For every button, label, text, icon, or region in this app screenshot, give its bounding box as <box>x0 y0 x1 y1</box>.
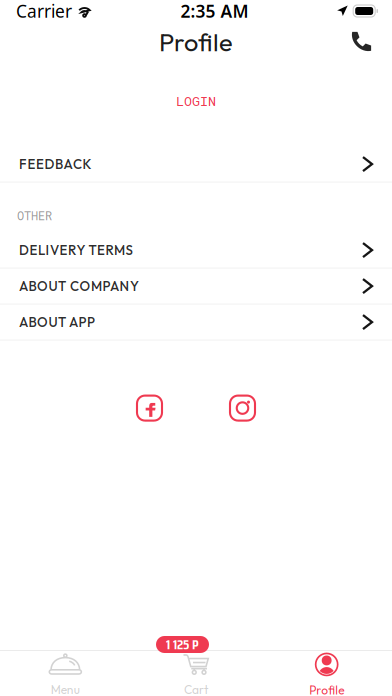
button[interactable]: ABOUT COMPANY <box>0 269 392 305</box>
staticText: 1 125 P <box>166 633 199 655</box>
button[interactable]: DELIVERY TERMS <box>0 233 392 269</box>
button[interactable]: Cart <box>131 651 261 696</box>
button[interactable]: Instagram <box>230 396 255 421</box>
staticText: 2:35 AM <box>181 0 249 22</box>
button[interactable]: Call <box>336 22 392 62</box>
staticText: Cart <box>184 682 208 696</box>
button[interactable]: Profile <box>261 651 392 696</box>
staticText: Profile <box>159 26 233 58</box>
staticText: FEEDBACK <box>19 156 91 172</box>
button[interactable]: LOGIN <box>150 82 242 120</box>
staticText: OTHER <box>17 208 52 223</box>
staticText: LOGIN <box>176 92 216 110</box>
button[interactable]: Facebook <box>137 396 162 421</box>
button[interactable]: Menu <box>0 651 131 696</box>
button[interactable]: ABOUT APP <box>0 305 392 341</box>
staticText: Profile <box>309 682 344 696</box>
staticText: Carrier <box>16 0 72 22</box>
staticText: Menu <box>51 682 80 696</box>
button[interactable]: FEEDBACK <box>0 147 392 183</box>
button[interactable]: 1 125 P <box>156 636 209 653</box>
staticText: ABOUT COMPANY <box>19 278 139 294</box>
staticText: ABOUT APP <box>19 314 95 330</box>
staticText: DELIVERY TERMS <box>19 242 132 258</box>
